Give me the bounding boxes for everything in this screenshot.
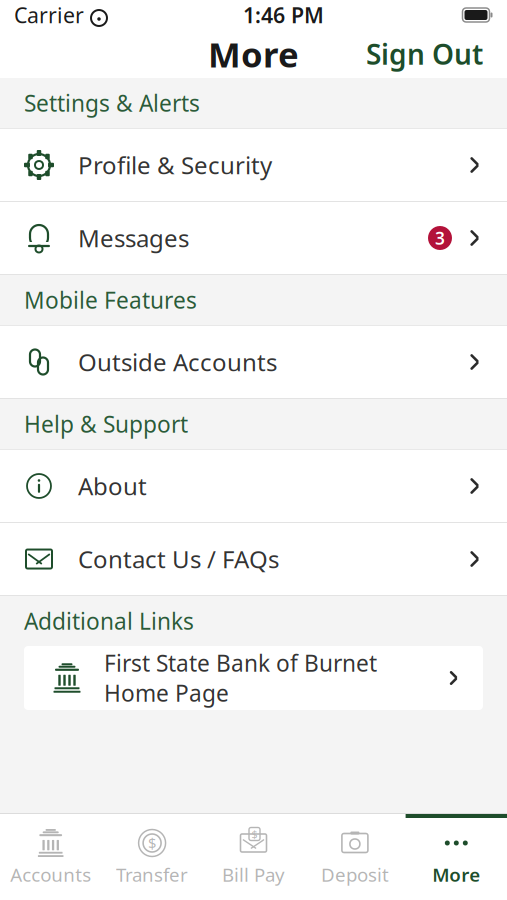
button[interactable]: Sign Out	[352, 27, 497, 81]
staticText: More	[208, 31, 299, 77]
staticText: $	[251, 827, 257, 841]
staticText: Profile & Security	[78, 149, 272, 181]
staticText: Additional Links	[24, 606, 194, 636]
staticText: Mobile Features	[24, 285, 197, 315]
staticText: $	[148, 833, 156, 853]
button[interactable]: Messages	[0, 202, 507, 274]
button[interactable]: Profile & Security	[0, 129, 507, 201]
button[interactable]: Contact Us / FAQs	[0, 523, 507, 595]
staticText: Carrier	[14, 1, 84, 29]
staticText: 1:46 PM	[243, 1, 324, 29]
staticText: Accounts	[10, 862, 91, 887]
staticText: Transfer	[116, 862, 188, 887]
staticText: Contact Us / FAQs	[78, 543, 279, 575]
staticText: First State Bank of Burnet Home Page	[104, 648, 377, 708]
staticText: Outside Accounts	[78, 346, 277, 378]
button[interactable]: More	[406, 814, 507, 900]
staticText: Sign Out	[366, 35, 483, 73]
staticText: Deposit	[321, 862, 389, 887]
button[interactable]: Deposit	[304, 814, 406, 900]
staticText: More	[432, 862, 480, 887]
button[interactable]: $	[101, 814, 203, 900]
button[interactable]: $	[203, 814, 304, 900]
staticText: Messages	[78, 222, 189, 254]
button[interactable]: First State Bank of Burnet Home Page	[24, 646, 483, 710]
staticText: Settings & Alerts	[24, 88, 200, 118]
button[interactable]: Outside Accounts	[0, 326, 507, 398]
staticText: 3	[435, 226, 445, 249]
staticText: About	[78, 470, 147, 502]
staticText: Bill Pay	[222, 862, 285, 887]
button[interactable]: About	[0, 450, 507, 522]
staticText: Help & Support	[24, 409, 188, 439]
button[interactable]: Accounts	[0, 814, 101, 900]
